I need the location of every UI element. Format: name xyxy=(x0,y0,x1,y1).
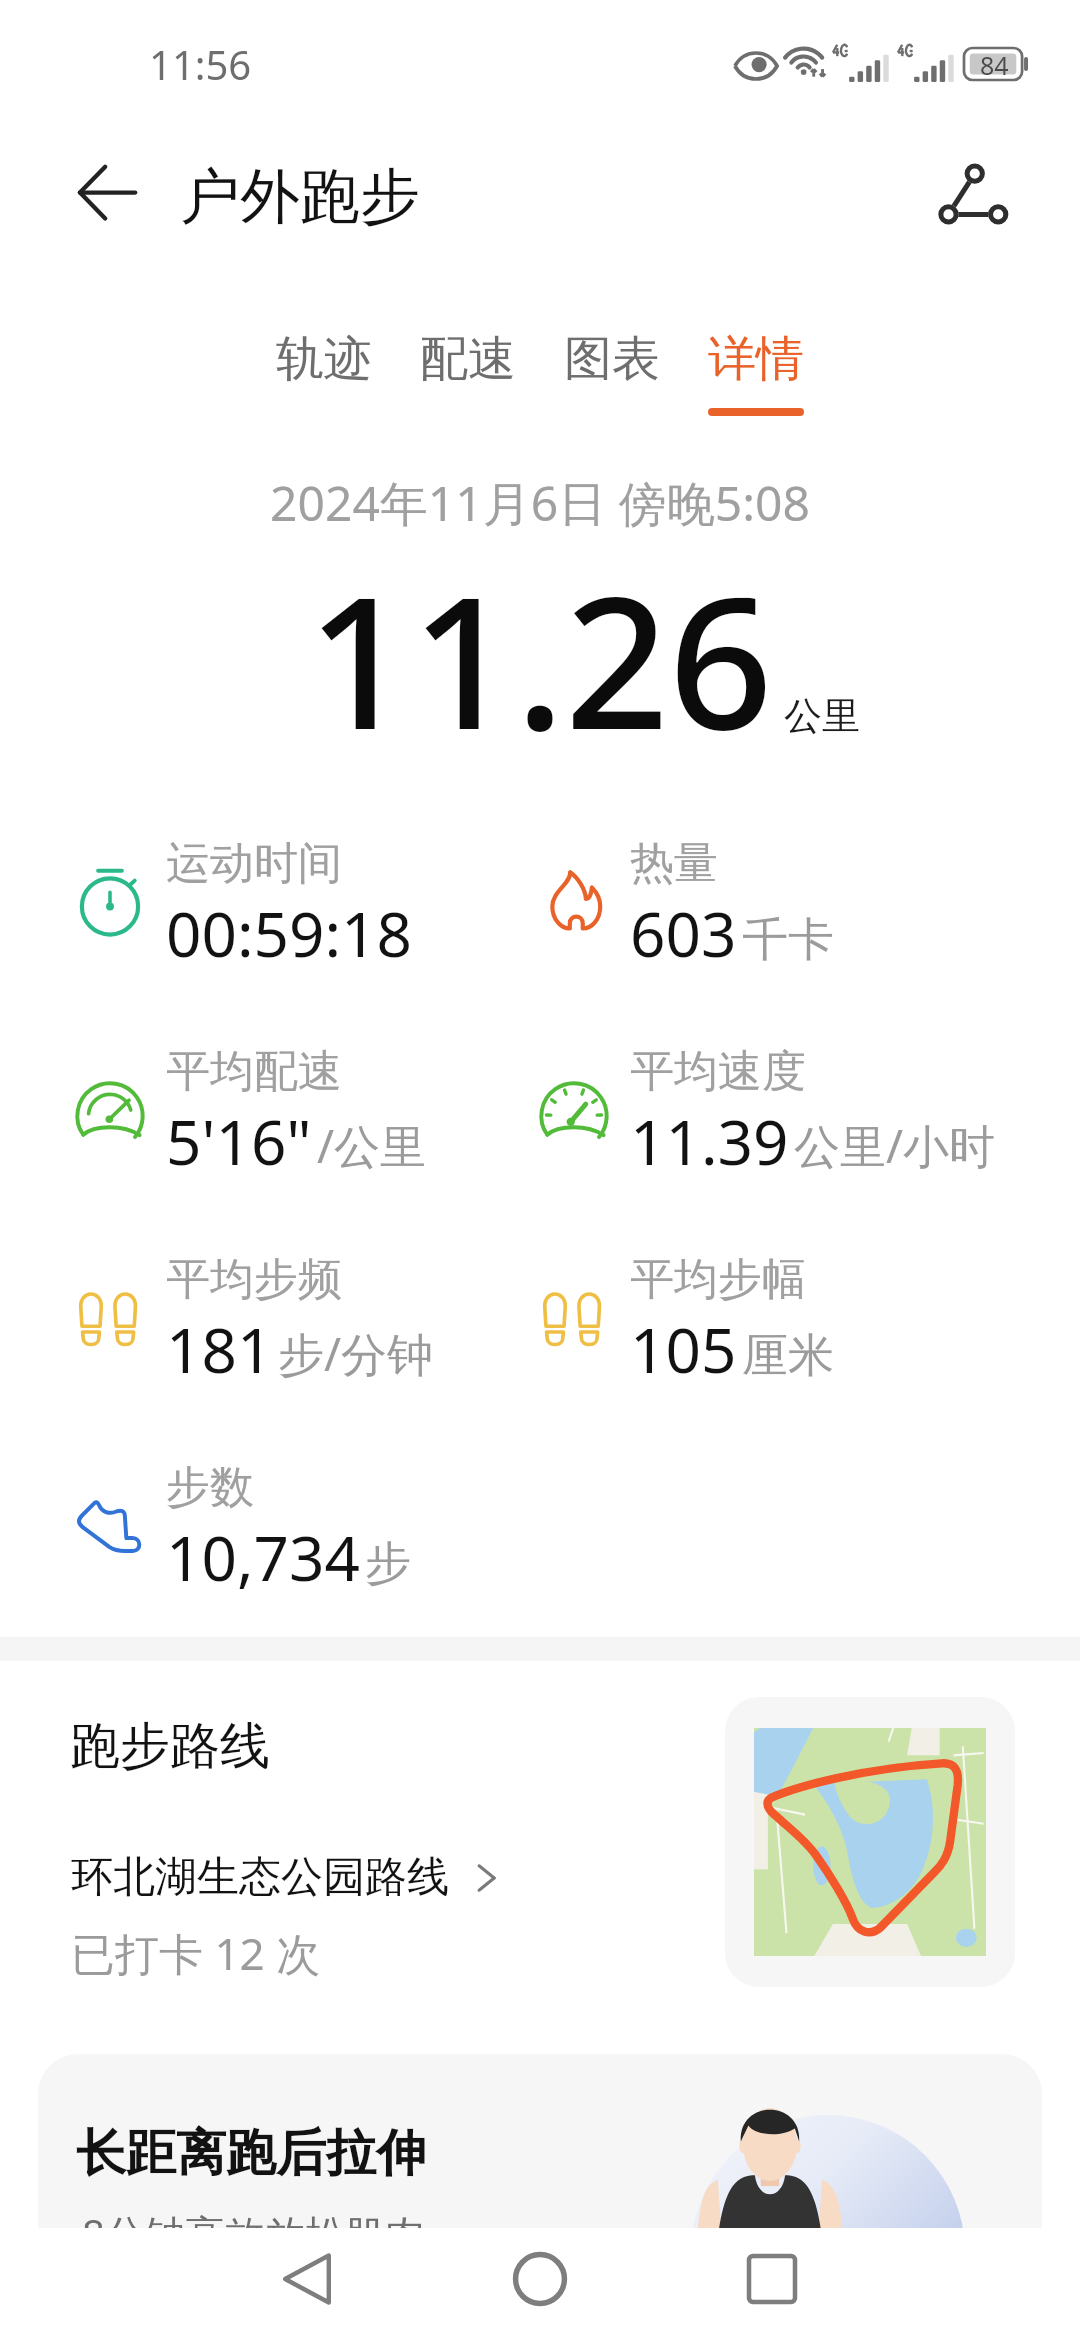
button[interactable]: 配速 xyxy=(396,325,540,420)
staticText: /公里 xyxy=(317,1114,427,1177)
staticText: 11.26 xyxy=(307,534,773,782)
staticText: 10,734 xyxy=(166,1515,360,1599)
staticText: 105 xyxy=(630,1307,737,1391)
staticText: 轨迹 xyxy=(276,329,372,389)
staticText: 已打卡 12 次 xyxy=(71,1923,321,1983)
staticText: 公里 xyxy=(784,692,860,740)
staticText: 步 xyxy=(365,1535,411,1593)
button[interactable]: Back xyxy=(253,2224,363,2334)
staticText: 11.39 xyxy=(630,1099,789,1183)
staticText: 00:59:18 xyxy=(166,891,413,975)
staticText: 详情 xyxy=(708,329,804,389)
staticText: 公里/小时 xyxy=(794,1114,996,1177)
staticText: 长距离跑后拉伸 xyxy=(76,2122,426,2185)
staticText: 图表 xyxy=(564,329,660,389)
staticText: 84 xyxy=(980,48,1009,80)
staticText: 户外跑步 xyxy=(180,159,420,235)
staticText: 11:56 xyxy=(149,37,252,91)
staticText: 2024年11月6日 傍晚5:08 xyxy=(0,470,1080,536)
button[interactable]: 平均配速 xyxy=(72,1044,427,1183)
button[interactable]: 运动时间 xyxy=(72,836,413,975)
button[interactable]: 轨迹 xyxy=(252,325,396,420)
staticText: 平均步幅 xyxy=(630,1252,806,1307)
button[interactable]: 热量 xyxy=(536,836,834,975)
button[interactable]: Recents xyxy=(717,2224,827,2334)
staticText: 平均步频 xyxy=(166,1252,342,1307)
button[interactable]: Home xyxy=(485,2224,595,2334)
staticText: 步/分钟 xyxy=(278,1322,434,1385)
staticText: 步数 xyxy=(166,1460,254,1515)
button[interactable]: 步数 xyxy=(72,1460,411,1599)
button[interactable]: 长距离跑后拉伸 xyxy=(38,2054,1042,2340)
button[interactable]: 跑步路线 xyxy=(0,1661,1080,2021)
staticText: 平均配速 xyxy=(166,1044,342,1099)
staticText: 181 xyxy=(166,1307,273,1391)
staticText: 配速 xyxy=(420,329,516,389)
staticText: 平均速度 xyxy=(630,1044,806,1099)
staticText: 5'16" xyxy=(166,1099,312,1183)
button[interactable]: 平均步幅 xyxy=(536,1252,834,1391)
staticText: 运动时间 xyxy=(166,836,342,891)
button[interactable]: Back xyxy=(55,145,159,249)
staticText: 603 xyxy=(630,891,737,975)
staticText: 千卡 xyxy=(742,911,834,969)
button[interactable]: 平均速度 xyxy=(536,1044,996,1183)
staticText: 厘米 xyxy=(742,1327,834,1385)
button[interactable]: 平均步频 xyxy=(72,1252,434,1391)
staticText: 跑步路线 xyxy=(70,1715,270,1778)
button[interactable]: Share xyxy=(921,145,1025,249)
staticText: 热量 xyxy=(630,836,718,891)
staticText: 环北湖生态公园路线 xyxy=(71,1851,449,1904)
staticText: 8分钟高效放松肌肉 xyxy=(82,2206,425,2261)
button[interactable]: 图表 xyxy=(540,325,684,420)
button[interactable]: 详情 xyxy=(684,325,828,420)
